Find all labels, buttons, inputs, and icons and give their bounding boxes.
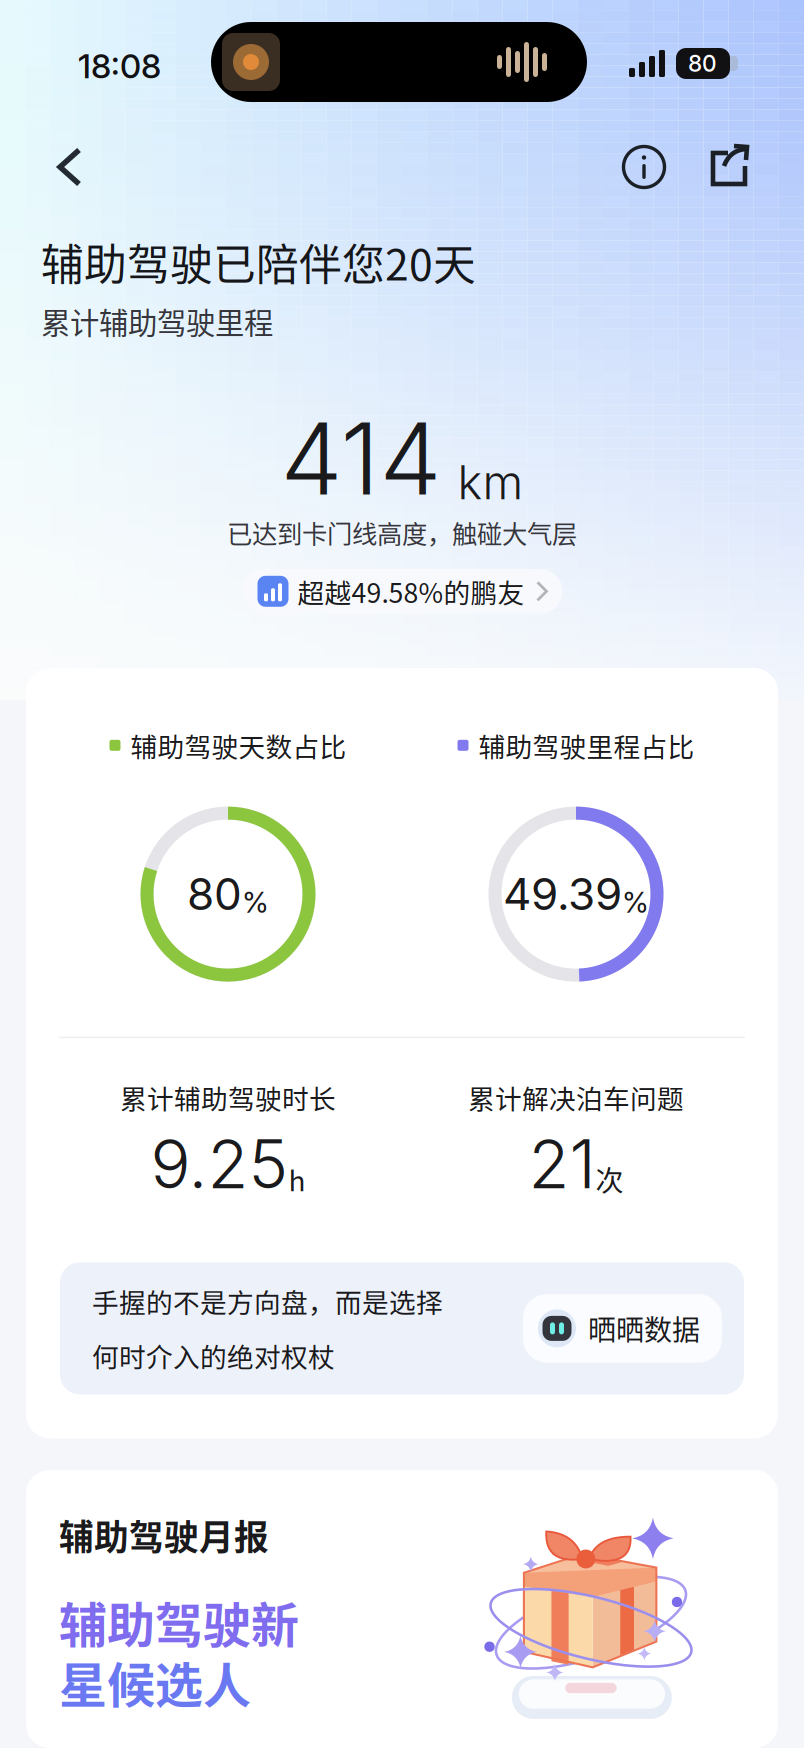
staticText: 累计辅助驾驶时长 [120, 1078, 336, 1117]
staticText: 80 [187, 867, 242, 921]
staticText: 何时介入的绝对权杖 [92, 1336, 335, 1375]
staticText: 18:08 [78, 46, 161, 86]
button[interactable]: Share [702, 141, 754, 193]
staticText: 21 [528, 1124, 595, 1204]
staticText: 辅助驾驶已陪伴您20天 [41, 231, 476, 293]
staticText: 累计辅助驾驶里程 [41, 300, 273, 342]
staticText: 累计解决泊车问题 [468, 1078, 684, 1117]
button[interactable]: 超越49.58%的鹏友 [241, 569, 562, 614]
staticText: % [242, 885, 269, 920]
staticText: 次 [595, 1159, 623, 1199]
staticText: 星候选人 [59, 1647, 251, 1716]
staticText: 辅助驾驶天数占比 [130, 726, 346, 765]
staticText: h [288, 1159, 305, 1199]
button[interactable]: Info [618, 141, 670, 193]
button[interactable]: 晒晒数据 [523, 1294, 722, 1363]
staticText: 晒晒数据 [588, 1308, 700, 1349]
staticText: km [457, 454, 523, 510]
staticText: 414 [280, 399, 441, 518]
staticText: % [622, 885, 649, 920]
staticText: 辅助驾驶里程占比 [478, 726, 694, 765]
staticText: 已达到卡门线高度，触碰大气层 [227, 514, 577, 551]
staticText: 超越49.58%的鹏友 [297, 572, 524, 611]
staticText: 手握的不是方向盘，而是选择 [92, 1282, 443, 1320]
staticText: 辅助驾驶新 [59, 1587, 299, 1656]
button[interactable]: Back [48, 141, 98, 193]
staticText: 辅助驾驶月报 [59, 1510, 269, 1560]
staticText: 49.39 [503, 867, 622, 921]
staticText: 80 [688, 50, 717, 77]
staticText: 9.25 [150, 1124, 288, 1204]
